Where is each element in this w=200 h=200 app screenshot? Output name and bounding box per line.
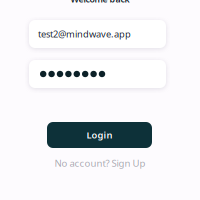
button[interactable]: Login	[47, 122, 152, 148]
staticText: Login	[86, 129, 112, 141]
button[interactable]: No account? Sign Up	[0, 156, 200, 170]
staticText: test2@mindwave.app	[38, 28, 131, 40]
staticText: Welcome back	[70, 0, 129, 5]
staticText: No account? Sign Up	[54, 156, 145, 170]
